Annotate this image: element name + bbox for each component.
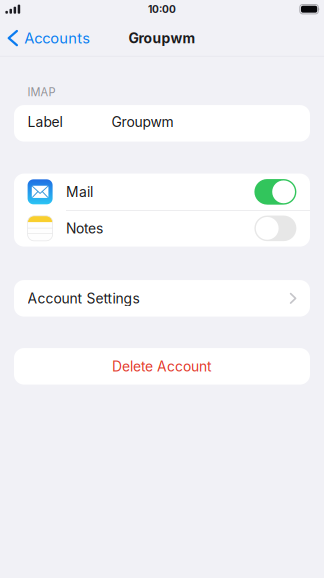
button[interactable]: Accounts xyxy=(0,23,97,53)
staticText: Accounts xyxy=(24,29,90,47)
staticText: IMAP xyxy=(28,85,56,99)
staticText: Account Settings xyxy=(28,290,140,307)
staticText: 10:00 xyxy=(148,3,176,15)
staticText: Groupwm xyxy=(111,114,173,130)
staticText: Mail xyxy=(66,183,93,200)
staticText: Label xyxy=(28,114,63,130)
button[interactable]: Account Settings xyxy=(0,280,324,317)
staticText: Delete Account xyxy=(112,358,212,375)
staticText: Groupwm xyxy=(128,30,195,46)
button[interactable]: Delete Account xyxy=(0,348,324,385)
staticText: Notes xyxy=(66,220,103,237)
